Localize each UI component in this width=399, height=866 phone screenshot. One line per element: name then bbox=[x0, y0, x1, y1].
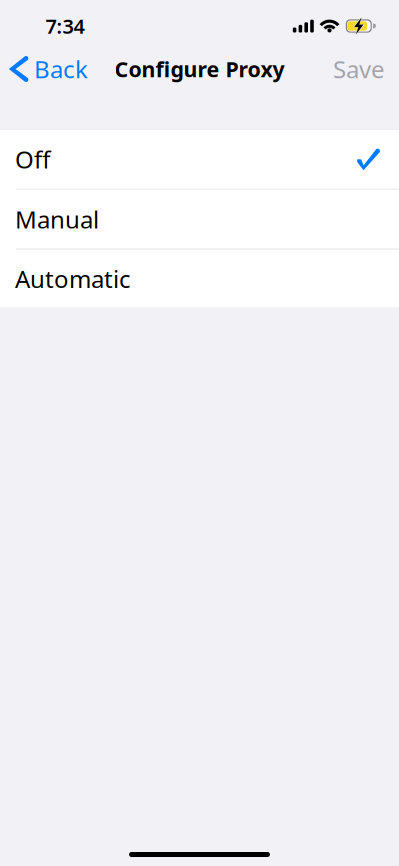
staticText: Configure Proxy bbox=[114, 55, 284, 83]
staticText: Back bbox=[34, 53, 88, 85]
staticText: Off bbox=[15, 143, 51, 175]
button[interactable]: Off bbox=[0, 130, 399, 190]
staticText: Save bbox=[333, 53, 385, 85]
button[interactable]: Manual bbox=[0, 190, 399, 250]
button[interactable]: Save bbox=[325, 47, 399, 91]
staticText: Automatic bbox=[15, 263, 131, 295]
staticText: Manual bbox=[15, 203, 99, 235]
button[interactable]: Back bbox=[0, 47, 96, 91]
staticText: 7:34 bbox=[45, 13, 84, 39]
button[interactable]: Automatic bbox=[0, 250, 399, 308]
